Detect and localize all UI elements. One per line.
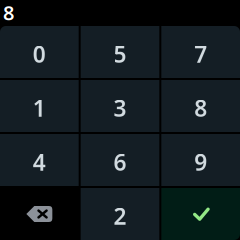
- staticText: 9: [194, 147, 207, 177]
- staticText: 1: [33, 93, 46, 123]
- staticText: 8: [3, 0, 14, 26]
- button[interactable]: 1: [0, 80, 79, 132]
- button[interactable]: 7: [161, 26, 240, 78]
- staticText: 2: [113, 201, 126, 231]
- button[interactable]: 9: [161, 134, 240, 186]
- button[interactable]: Delete: [0, 188, 79, 240]
- staticText: 6: [113, 147, 126, 177]
- button[interactable]: 3: [81, 80, 159, 132]
- button[interactable]: 5: [81, 26, 159, 78]
- staticText: 3: [113, 93, 126, 123]
- staticText: 5: [113, 39, 126, 69]
- button[interactable]: Confirm: [161, 188, 240, 240]
- button[interactable]: 6: [81, 134, 159, 186]
- button[interactable]: 2: [81, 188, 159, 240]
- button[interactable]: 4: [0, 134, 79, 186]
- staticText: 8: [194, 93, 207, 123]
- button[interactable]: 8: [161, 80, 240, 132]
- staticText: 7: [194, 39, 207, 69]
- button[interactable]: 0: [0, 26, 79, 78]
- staticText: 4: [33, 147, 46, 177]
- staticText: 0: [33, 39, 46, 69]
